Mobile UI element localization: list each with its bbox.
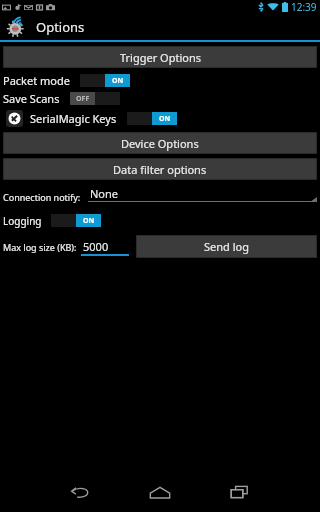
button[interactable]: Max log size field [81,238,129,256]
staticText: ON [83,216,95,226]
staticText: Data filter options [113,162,207,177]
staticText: Logging [3,214,42,228]
button[interactable]: Switch off [70,92,120,105]
button[interactable]: Trigger Options [3,46,317,68]
staticText: ON [112,76,124,86]
staticText: None [90,186,119,201]
staticText: 5000 [83,239,109,254]
staticText: Connection notify: [3,191,81,203]
staticText: Options [36,18,85,36]
staticText: SerialMagic Keys [30,111,117,126]
button[interactable]: Switch on [51,214,101,227]
button[interactable]: Back [40,472,120,512]
staticText: ON [159,114,171,124]
button[interactable]: Send log [136,235,317,258]
button[interactable]: Connection notify selector [88,186,317,207]
button[interactable]: Data filter options [3,158,317,180]
button[interactable]: Switch on [80,74,130,87]
staticText: Max log size (KB): [3,241,77,253]
staticText: Send log [204,239,249,254]
staticText: Save Scans [3,91,60,106]
staticText: Packet mode [3,73,70,88]
staticText: Device Options [121,136,199,151]
staticText: 12:39 [291,0,317,14]
staticText: Trigger Options [120,50,201,65]
button[interactable]: Recent apps [200,472,280,512]
button[interactable]: Device Options [3,132,317,154]
button[interactable]: Home [120,472,200,512]
button[interactable]: SerialMagic Keys [6,110,23,127]
staticText: OFF [76,94,90,104]
button[interactable]: Switch on [127,112,177,125]
